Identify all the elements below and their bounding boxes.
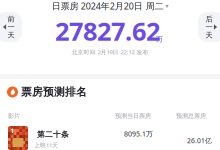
staticText: 8095.1万 [124, 129, 153, 138]
staticText: 日票房 2024年2月20日 周二 [52, 0, 164, 12]
button[interactable]: 前一天 [0, 12, 22, 42]
staticText: 影片 [8, 112, 20, 120]
staticText: 北京时间 2月19日 22:12 发布 [71, 48, 148, 56]
staticText: ▾ [165, 2, 168, 10]
staticText: 预测当日票房 [115, 112, 151, 120]
staticText: 一 [205, 22, 212, 32]
staticText: 票房预测排名 [21, 85, 87, 99]
staticText: 第二十条 [37, 129, 69, 139]
staticText: 26.01亿 [187, 136, 212, 145]
staticText: 一 [8, 22, 15, 32]
staticText: 后 [205, 14, 212, 24]
staticText: 27827.62 [55, 14, 160, 48]
staticText: 1 [10, 125, 14, 136]
staticText: 前 [8, 14, 15, 24]
staticText: 预测总票房 [176, 112, 206, 120]
button[interactable]: 后一天 [198, 12, 220, 42]
staticText: 天 [8, 30, 15, 40]
staticText: 万 [156, 34, 163, 44]
button[interactable]: 1 [0, 126, 220, 150]
button[interactable]: 日票房 2024年2月20日 周二 [0, 1, 220, 11]
staticText: 上映11天 [34, 141, 58, 149]
staticText: 天 [205, 30, 212, 40]
